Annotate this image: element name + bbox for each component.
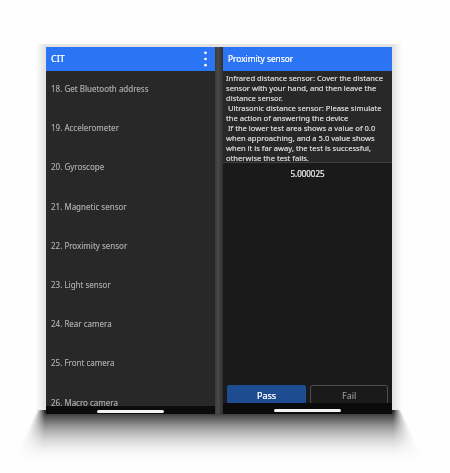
button[interactable]: 22. Proximity sensor: [46, 226, 215, 265]
staticText: 18. Get Bluetooth address: [51, 83, 149, 94]
button[interactable]: 18. Get Bluetooth address: [46, 69, 215, 108]
staticText: Proximity sensor: [228, 53, 294, 64]
button[interactable]: 24. Rear camera: [46, 304, 215, 343]
staticText: 21. Magnetic sensor: [51, 201, 127, 212]
button[interactable]: 26. Macro camera: [46, 383, 215, 422]
staticText: 20. Gyroscope: [51, 161, 105, 172]
staticText: 23. Light sensor: [51, 279, 111, 290]
staticText: 24. Rear camera: [51, 318, 112, 329]
staticText: 5.000025: [223, 168, 392, 179]
button[interactable]: 21. Magnetic sensor: [46, 187, 215, 226]
staticText: 22. Proximity sensor: [51, 240, 128, 251]
button[interactable]: 19. Accelerometer: [46, 108, 215, 147]
button[interactable]: 20. Gyroscope: [46, 147, 215, 186]
button[interactable]: 23. Light sensor: [46, 265, 215, 304]
staticText: Pass: [257, 389, 277, 401]
button[interactable]: 25. Front camera: [46, 343, 215, 382]
staticText: 19. Accelerometer: [51, 122, 119, 133]
button[interactable]: More options: [194, 47, 215, 71]
button[interactable]: Pass: [227, 385, 306, 404]
staticText: 25. Front camera: [51, 357, 115, 368]
staticText: Fail: [342, 389, 357, 401]
staticText: Infrared distance sensor: Cover the dist…: [226, 73, 391, 162]
staticText: 26. Macro camera: [51, 397, 118, 408]
button[interactable]: Fail: [310, 385, 388, 404]
staticText: CIT: [51, 52, 65, 64]
